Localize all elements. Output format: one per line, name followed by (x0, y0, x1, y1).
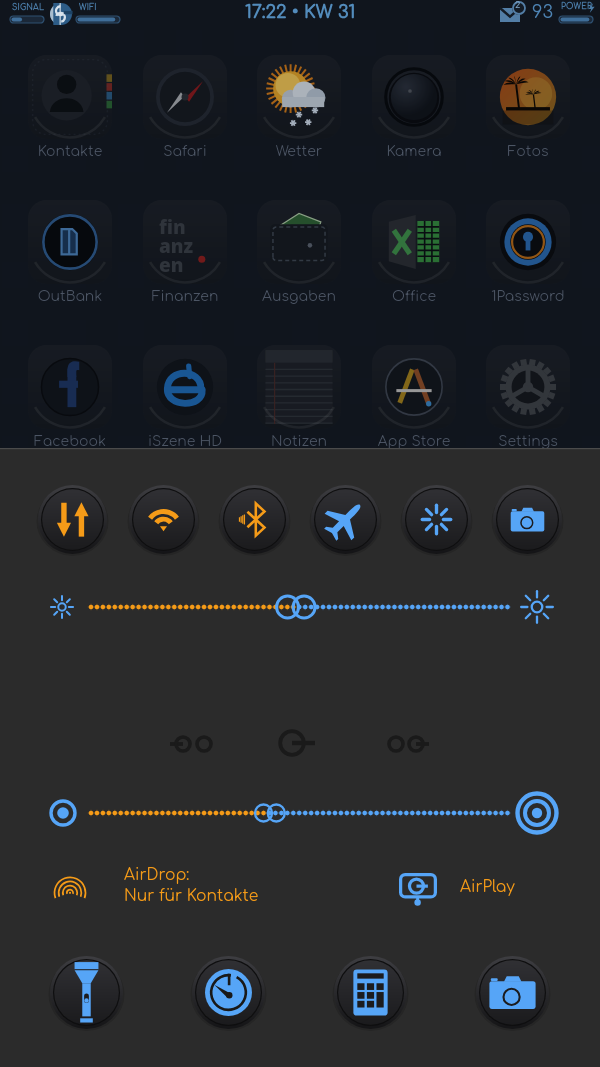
staticText: AirDrop: Nur für Kontakte (124, 866, 259, 905)
staticText: fin anz en (159, 214, 194, 277)
button[interactable]: Nicht stören (400, 483, 473, 556)
button[interactable]: iSzene HD (128, 345, 242, 452)
staticText: Facebook (13, 434, 127, 450)
staticText: App Store (357, 434, 471, 450)
staticText: Office (357, 289, 471, 305)
button[interactable]: Safari (128, 55, 242, 162)
button[interactable]: Vorheriger Titel (167, 724, 219, 764)
button[interactable]: App Store (357, 345, 471, 452)
button[interactable]: Ausgaben (242, 200, 356, 307)
staticText: 17:22 • KW 31 (245, 2, 356, 22)
staticText: Ausgaben (242, 289, 356, 305)
staticText: OutBank (13, 289, 127, 305)
button[interactable]: Settings (471, 345, 585, 452)
button[interactable]: Timer (190, 954, 267, 1031)
button[interactable]: AirPlay (398, 861, 528, 919)
button[interactable]: Wetter (242, 55, 356, 162)
button[interactable]: Wiedergabe (274, 721, 326, 765)
staticText: Fotos (471, 144, 585, 160)
button[interactable]: Bluetooth (218, 483, 291, 556)
button[interactable]: Kamera (491, 483, 564, 556)
button[interactable]: Nächster Titel (381, 724, 433, 764)
button[interactable]: Office (357, 200, 471, 307)
staticText: Notizen (242, 434, 356, 450)
button[interactable]: Kamera (474, 954, 551, 1031)
button[interactable]: WLAN (127, 483, 200, 556)
staticText: 1Password (471, 289, 585, 305)
button[interactable]: Helligkeit (0, 582, 600, 632)
staticText: Kamera (357, 144, 471, 160)
staticText: SIGNAL (12, 3, 45, 12)
button[interactable]: OutBank (13, 200, 127, 307)
staticText: AirPlay (460, 878, 515, 895)
button[interactable]: Lautstärke (0, 788, 600, 838)
staticText: 93 (532, 2, 553, 22)
button[interactable]: Kamera (357, 55, 471, 162)
button[interactable]: Kontakte (13, 55, 127, 162)
staticText: POWER (561, 2, 593, 11)
staticText: Wetter (242, 144, 356, 160)
button[interactable]: Mobile Daten (36, 483, 109, 556)
staticText: Safari (128, 144, 242, 160)
button[interactable]: Finanzen (128, 200, 242, 307)
staticText: Kontakte (13, 144, 127, 160)
staticText: 2 (515, 0, 521, 10)
button[interactable]: Fotos (471, 55, 585, 162)
button[interactable]: Facebook (13, 345, 127, 452)
button[interactable]: Taschenlampe (48, 954, 125, 1031)
button[interactable]: AirDrop: Nur für Kontakte (52, 861, 262, 919)
button[interactable]: Notizen (242, 345, 356, 452)
button[interactable]: Flugmodus (309, 483, 382, 556)
staticText: iSzene HD (128, 434, 242, 450)
button[interactable]: Rechner (332, 954, 409, 1031)
staticText: WIFI (79, 3, 97, 12)
staticText: Finanzen (128, 289, 242, 305)
button[interactable]: 1Password (471, 200, 585, 307)
staticText: Settings (471, 434, 585, 450)
